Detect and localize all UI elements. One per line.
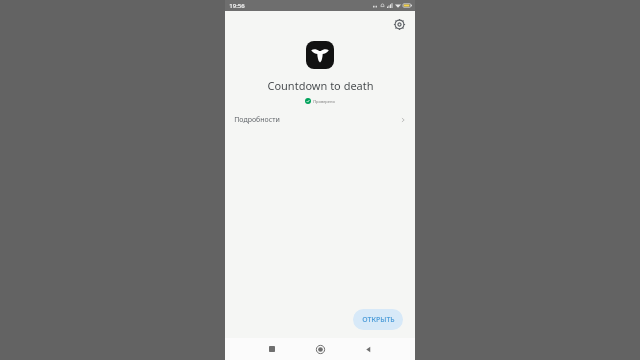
button[interactable]: ОТКРЫТЬ <box>353 309 403 330</box>
button[interactable]: Подробности <box>225 112 415 128</box>
button[interactable]: Recent apps <box>263 340 281 358</box>
button[interactable]: Back <box>359 340 377 358</box>
staticText: ОТКРЫТЬ <box>362 315 395 325</box>
staticText: 19:56 <box>229 2 245 10</box>
button[interactable]: Home <box>311 340 329 358</box>
button[interactable]: Settings <box>391 16 407 32</box>
staticText: Проверено <box>313 99 335 104</box>
staticText: Подробности <box>234 115 280 125</box>
staticText: Countdown to death <box>267 78 374 93</box>
